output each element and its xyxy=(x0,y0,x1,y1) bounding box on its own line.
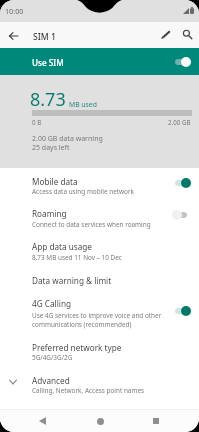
staticText: App data usage xyxy=(32,241,92,252)
button[interactable]: Back xyxy=(31,409,53,431)
staticText: 2.00 GB data warning xyxy=(32,134,103,144)
staticText: Connect to data services when roaming xyxy=(32,220,151,229)
staticText: 4G Calling xyxy=(32,298,71,309)
staticText: Use 4G services to improve voice and oth… xyxy=(32,311,162,320)
button[interactable]: Use SIM xyxy=(0,48,199,75)
button[interactable] xyxy=(0,370,199,398)
staticText: 10:00 xyxy=(5,6,24,16)
button[interactable] xyxy=(0,171,199,200)
button[interactable] xyxy=(0,236,199,264)
staticText: 25 days left xyxy=(32,143,70,153)
button[interactable]: Search xyxy=(176,23,199,46)
staticText: SIM 1 xyxy=(33,31,56,43)
staticText: 8.73 xyxy=(30,87,66,112)
staticText: communications (recommended) xyxy=(32,320,132,329)
button[interactable] xyxy=(0,336,199,364)
button[interactable] xyxy=(0,270,199,292)
staticText: Roaming xyxy=(32,208,67,219)
button[interactable]: Back xyxy=(1,24,25,48)
staticText: Mobile data xyxy=(32,176,78,187)
staticText: Calling, Network, Access point names xyxy=(32,386,145,395)
staticText: Use SIM xyxy=(32,57,64,68)
button[interactable]: Home xyxy=(89,409,111,431)
staticText: 8.73 MB used 11 Nov – 10 Dec xyxy=(32,253,122,262)
staticText: 5G/4G/3G/2G xyxy=(32,353,73,362)
staticText: Data warning & limit xyxy=(32,275,112,286)
button[interactable] xyxy=(0,203,199,232)
staticText: 0 B xyxy=(32,118,42,126)
staticText: MB used xyxy=(69,100,97,109)
staticText: 2.00 GB xyxy=(168,118,191,126)
staticText: Access data using mobile network xyxy=(32,187,135,196)
staticText: Preferred network type xyxy=(32,342,122,353)
staticText: Advanced xyxy=(32,375,70,386)
button[interactable] xyxy=(0,293,199,331)
button[interactable]: Recents xyxy=(145,409,167,431)
button[interactable]: Edit xyxy=(154,23,177,46)
